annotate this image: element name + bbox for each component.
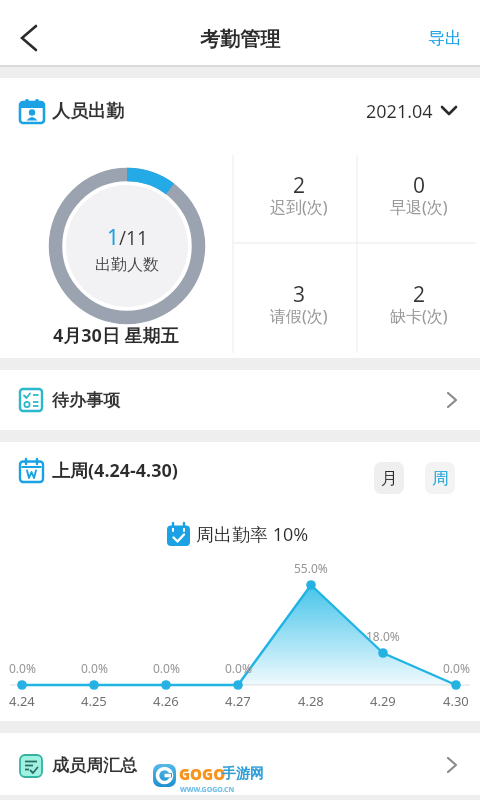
staticText: 0.0% [9,660,36,676]
staticText: 0.0% [443,660,470,676]
button[interactable]: 周 [425,462,455,494]
staticText: 0.0% [153,660,180,676]
staticText: 缺卡(次) [390,305,448,327]
staticText: 4.28 [298,692,324,710]
staticText: 成员周汇总 [52,755,137,776]
staticText: 导出 [428,28,462,49]
staticText: 2 [413,280,426,308]
staticText: 人员出勤 [52,100,124,123]
staticText: 月 [381,468,398,489]
staticText: 55.0% [294,560,328,576]
staticText: 4.29 [370,692,396,710]
staticText: 出勤人数 [95,255,159,275]
staticText: 0 [413,171,426,199]
staticText: 3 [293,280,306,308]
staticText: 4.25 [81,692,107,710]
staticText: 手游网 [222,765,264,783]
button[interactable]: 月 [374,462,404,494]
staticText: 2021.04 [366,99,433,124]
button[interactable]: 2021.04 [366,96,472,126]
staticText: 0.0% [225,660,252,676]
button[interactable]: 成员周汇总 [0,733,480,795]
button[interactable] [8,18,52,58]
staticText: 4.24 [9,692,35,710]
staticText: 周出勤率 10% [196,522,309,547]
staticText: 1/11 [107,223,148,252]
staticText: 4.30 [443,692,469,710]
staticText: 4.26 [153,692,179,710]
staticText: 2 [293,171,306,199]
staticText: 周 [432,468,449,489]
button[interactable]: 待办事项 [0,370,480,430]
staticText: 0.0% [81,660,108,676]
staticText: 4月30日 星期五 [53,323,179,348]
staticText: 18.0% [366,628,400,644]
staticText: WWW.GOGO.CN [180,785,235,795]
staticText: GOGO [179,764,226,784]
staticText: 早退(次) [390,196,448,218]
staticText: 4.27 [225,692,251,710]
staticText: 请假(次) [270,305,328,327]
staticText: 迟到(次) [270,196,328,218]
staticText: 考勤管理 [200,27,280,52]
button[interactable]: 导出 [418,20,472,56]
staticText: 待办事项 [52,390,120,411]
staticText: 上周(4.24-4.30) [52,458,178,483]
